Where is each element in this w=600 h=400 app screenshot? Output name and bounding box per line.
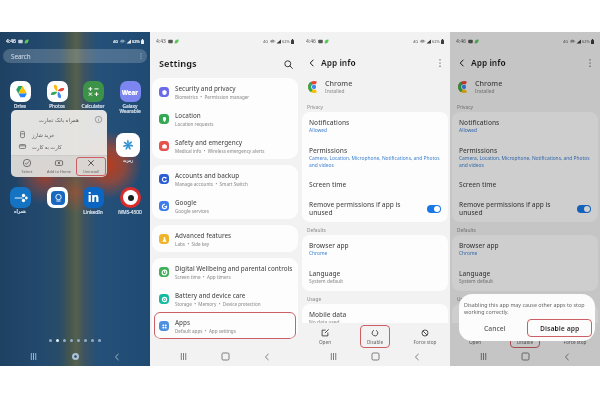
button[interactable]: Battery and device care	[152, 285, 298, 312]
staticText: 62%	[132, 39, 140, 44]
staticText: Mobile data	[309, 310, 347, 319]
button[interactable]: Select	[12, 157, 42, 176]
staticText: Chrome	[325, 78, 353, 88]
staticText: Google	[175, 198, 197, 207]
staticText: Disabling this app may cause other apps …	[464, 301, 590, 316]
button[interactable]: Language	[302, 263, 448, 291]
button[interactable]: Notifications	[452, 112, 598, 140]
staticText: خرید شارژ	[32, 131, 55, 138]
button[interactable]: rozmaneh	[116, 133, 140, 157]
button[interactable]: Drive	[5, 81, 35, 110]
button[interactable]: Force stop	[560, 325, 590, 348]
button[interactable]: Open	[310, 325, 340, 348]
button[interactable]: Recents	[24, 349, 42, 364]
button[interactable]: Browser app	[302, 235, 448, 263]
button[interactable]: Remove permissions if app is unused	[302, 195, 448, 222]
staticText: Privacy	[307, 104, 323, 111]
button[interactable]: Screen time	[452, 174, 598, 195]
staticText: Disable	[360, 339, 390, 345]
button[interactable]: More options	[584, 57, 596, 69]
button[interactable]: Back	[306, 57, 317, 68]
staticText: Search	[11, 52, 31, 60]
button[interactable]: Disable	[510, 325, 540, 348]
staticText: Apps	[175, 318, 190, 327]
button[interactable]: Security and privacy	[152, 78, 298, 105]
button[interactable]: Search	[3, 49, 147, 63]
button[interactable]: Wear	[115, 81, 145, 115]
button[interactable]: همراه	[5, 187, 35, 215]
staticText: Permissions	[309, 146, 348, 155]
staticText: Notifications	[459, 118, 500, 127]
button[interactable]: خرید شارژ	[11, 128, 107, 140]
button[interactable]: Permissions	[302, 140, 448, 174]
button[interactable]: Back	[258, 349, 276, 364]
staticText: Remove permissions if app is unused	[459, 200, 557, 217]
button[interactable]: Apps	[152, 312, 298, 339]
staticText: Installed	[475, 88, 495, 95]
button[interactable]: Chrome	[308, 78, 444, 95]
staticText: Usage	[457, 296, 472, 303]
button[interactable]: Cancel	[462, 318, 527, 338]
staticText: 4:46	[456, 38, 466, 45]
staticText: 62%	[282, 39, 290, 44]
button[interactable]: Notifications	[302, 112, 448, 140]
button[interactable]: Location	[152, 105, 298, 132]
staticText: 4G	[563, 39, 569, 44]
button[interactable]: Back	[408, 349, 426, 364]
button[interactable]: Back	[108, 349, 126, 364]
staticText: Force stop	[560, 339, 590, 345]
staticText: 4:46	[306, 38, 316, 45]
staticText: Advanced features	[175, 231, 232, 240]
button[interactable]: Home	[516, 349, 534, 364]
button[interactable]: Mobile data	[302, 304, 448, 332]
button[interactable]: Recents	[474, 349, 492, 364]
button[interactable]: Recents	[174, 349, 192, 364]
button[interactable]: in	[78, 187, 108, 216]
button[interactable]: Screen time	[302, 174, 448, 195]
button[interactable]: کارت به کارت	[11, 140, 107, 152]
button[interactable]: Disable	[360, 325, 390, 348]
staticText: 4G	[113, 39, 119, 44]
staticText: Location requests	[175, 121, 214, 127]
staticText: Labs • Side key	[175, 241, 210, 247]
button[interactable]: Add to Home	[44, 157, 74, 176]
button[interactable]: Calculator	[78, 81, 108, 110]
staticText: Screen time	[459, 180, 497, 189]
button[interactable]: Home	[216, 349, 234, 364]
button[interactable]	[42, 187, 72, 216]
button[interactable]: More options	[434, 57, 446, 69]
button[interactable]: Recents	[324, 349, 342, 364]
button[interactable]: Uninstall	[76, 157, 106, 176]
staticText: Medical info • Wireless emergency alerts	[175, 148, 265, 154]
staticText: Security and privacy	[175, 84, 236, 93]
button[interactable]: iVMS-4500	[115, 187, 145, 216]
button[interactable]: Language	[452, 263, 598, 291]
staticText: Battery and device care	[175, 291, 246, 300]
button[interactable]: Remove permissions if app is unused	[452, 195, 598, 222]
button[interactable]: Back	[558, 349, 576, 364]
button[interactable]: Open	[460, 325, 490, 348]
button[interactable]: Safety and emergency	[152, 132, 298, 159]
button[interactable]: Digital Wellbeing and parental controls	[152, 258, 298, 285]
button[interactable]: Disable app	[527, 319, 592, 337]
staticText: Biometrics • Permission manager	[175, 94, 250, 100]
staticText: iVMS-4500	[115, 209, 145, 216]
button[interactable]: Home	[366, 349, 384, 364]
button[interactable]: Photos	[42, 81, 72, 110]
staticText: Uninstall	[76, 169, 106, 174]
button[interactable]: Accounts and backup	[152, 165, 298, 192]
button[interactable]: Back	[456, 57, 467, 68]
button[interactable]: Chrome	[458, 78, 594, 95]
button[interactable]: Mobile data	[452, 304, 598, 332]
button[interactable]: Browser app	[452, 235, 598, 263]
button[interactable]: Force stop	[410, 325, 440, 348]
button[interactable]: Search	[281, 57, 295, 71]
button[interactable]: Google	[152, 192, 298, 219]
staticText: Safety and emergency	[175, 138, 243, 147]
button[interactable]: Advanced features	[152, 225, 298, 252]
button[interactable]: Permissions	[452, 140, 598, 174]
staticText: Cancel	[484, 324, 506, 333]
button[interactable]: Home	[66, 349, 84, 364]
staticText: Browser app	[309, 241, 349, 250]
button[interactable]: App info	[95, 116, 102, 123]
